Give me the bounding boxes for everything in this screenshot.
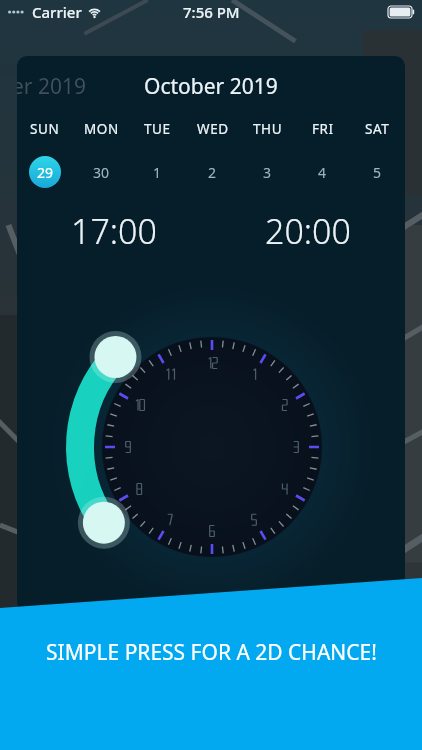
button[interactable]: SIMPLE PRESS FOR A 2D CHANCE! bbox=[0, 610, 422, 750]
staticText: MON bbox=[84, 120, 119, 138]
staticText: TUE bbox=[144, 120, 171, 138]
staticText: SUN bbox=[30, 120, 60, 138]
staticText: 2 bbox=[208, 163, 217, 182]
button[interactable]: 17:00 bbox=[17, 208, 211, 254]
staticText: THU bbox=[253, 120, 283, 138]
button[interactable]: 5 bbox=[350, 154, 405, 190]
staticText: 7:56 PM bbox=[183, 2, 240, 22]
other: Time range dial bbox=[17, 56, 405, 612]
staticText: October 2019 bbox=[144, 72, 278, 101]
button[interactable]: 20:00 bbox=[211, 208, 405, 254]
staticText: ber 2019 bbox=[17, 72, 86, 101]
staticText: 4 bbox=[318, 163, 327, 182]
staticText: 1 bbox=[153, 163, 162, 182]
button[interactable]: 29 bbox=[17, 154, 73, 190]
button[interactable]: 3 bbox=[240, 154, 295, 190]
staticText: 29 bbox=[37, 163, 54, 182]
staticText: SIMPLE PRESS FOR A 2D CHANCE! bbox=[46, 638, 377, 667]
staticText: 3 bbox=[263, 163, 272, 182]
button[interactable]: 1 bbox=[129, 154, 185, 190]
staticText: 20:00 bbox=[265, 208, 351, 254]
staticText: 30 bbox=[93, 163, 110, 182]
button[interactable]: 30 bbox=[73, 154, 129, 190]
button[interactable]: 2 bbox=[185, 154, 240, 190]
staticText: WED bbox=[197, 120, 229, 138]
button[interactable]: 4 bbox=[295, 154, 350, 190]
staticText: FRI bbox=[312, 120, 334, 138]
staticText: 5 bbox=[373, 163, 382, 182]
staticText: SAT bbox=[365, 120, 390, 138]
staticText: 17:00 bbox=[71, 208, 157, 254]
staticText: Carrier bbox=[32, 2, 82, 22]
